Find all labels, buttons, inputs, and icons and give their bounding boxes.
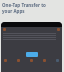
staticText: One-Tap Transfer to [2,2,46,8]
staticText: your Apps [2,8,25,14]
button[interactable]: App 5 [56,59,59,62]
button[interactable]: App 2 [17,59,20,62]
button[interactable]: App 3 [30,59,33,62]
button[interactable]: Profile [3,28,6,31]
button[interactable] [26,52,38,57]
button[interactable]: App 4 [43,59,46,62]
button[interactable]: More [57,28,60,31]
button[interactable]: App 1 [4,59,7,62]
